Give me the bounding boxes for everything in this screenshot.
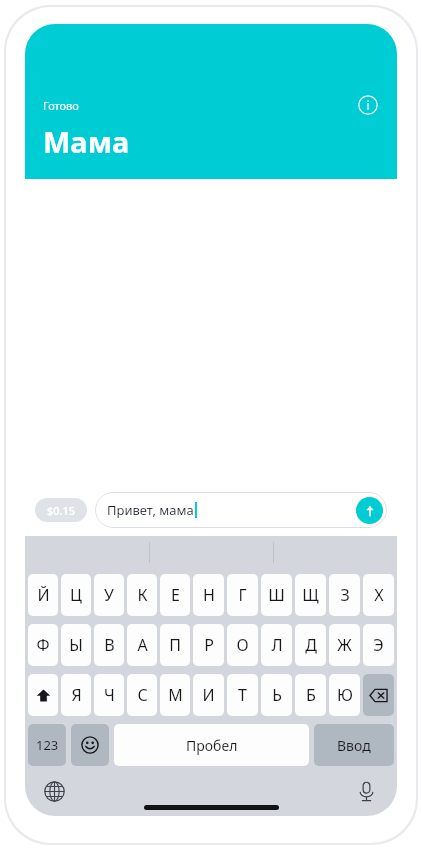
button[interactable]: Я (61, 674, 91, 716)
button[interactable]: Ю (329, 674, 360, 716)
staticText: 123 (36, 736, 59, 754)
button[interactable]: К (127, 574, 157, 616)
button[interactable]: Ф (28, 624, 58, 666)
button[interactable]: Готово (41, 94, 81, 117)
button[interactable]: М (160, 674, 190, 716)
staticText: И (202, 684, 215, 706)
button[interactable]: Р (193, 624, 224, 666)
staticText: Х (374, 584, 384, 606)
button[interactable]: У (94, 574, 124, 616)
staticText: А (137, 634, 148, 656)
button[interactable]: П (160, 624, 190, 666)
staticText: Ы (69, 634, 83, 656)
staticText: Ю (337, 684, 353, 706)
staticText: Ц (70, 584, 82, 606)
button[interactable]: Shift (28, 674, 58, 716)
button[interactable]: Д (295, 624, 326, 666)
staticText: М (168, 684, 183, 706)
button[interactable]: Ц (61, 574, 91, 616)
staticText: П (169, 634, 181, 656)
staticText: Ь (272, 684, 282, 706)
button[interactable]: Й (28, 574, 58, 616)
staticText: З (340, 584, 350, 606)
button[interactable]: Щ (295, 574, 326, 616)
button[interactable]: Б (295, 674, 326, 716)
button[interactable]: Change keyboard language (37, 774, 71, 808)
staticText: Л (271, 634, 283, 656)
staticText: Готово (43, 98, 79, 113)
button[interactable]: Н (193, 574, 224, 616)
staticText: $0.15 (47, 503, 76, 518)
button[interactable]: Л (261, 624, 292, 666)
button[interactable]: Info (355, 92, 381, 118)
staticText: В (104, 634, 115, 656)
button[interactable]: Ввод (314, 724, 394, 766)
button[interactable]: В (94, 624, 124, 666)
staticText: Щ (302, 584, 319, 606)
button[interactable]: Х (363, 574, 394, 616)
staticText: Я (71, 684, 82, 706)
staticText: Й (37, 584, 50, 606)
staticText: У (104, 584, 114, 606)
button[interactable]: 123 (28, 724, 66, 766)
button[interactable]: Ы (61, 624, 91, 666)
staticText: Ч (104, 684, 115, 706)
button[interactable]: Т (227, 674, 258, 716)
button[interactable]: Привет, мама (95, 492, 387, 528)
button[interactable]: С (127, 674, 157, 716)
staticText: Ф (36, 634, 50, 656)
staticText: Г (238, 584, 247, 606)
staticText: Ш (268, 584, 285, 606)
staticText: Е (171, 584, 180, 606)
button[interactable]: Ш (261, 574, 292, 616)
button[interactable]: Ь (261, 674, 292, 716)
button[interactable]: Г (227, 574, 258, 616)
button[interactable]: Пробел (114, 724, 309, 766)
staticText: Ж (337, 634, 352, 656)
button[interactable]: $0.15 (35, 498, 87, 522)
button[interactable]: Voice input (349, 774, 383, 808)
staticText: С (137, 684, 148, 706)
button[interactable]: А (127, 624, 157, 666)
staticText: Пробел (186, 736, 238, 755)
button[interactable]: Э (363, 624, 394, 666)
button[interactable]: Backspace (363, 674, 394, 716)
staticText: К (137, 584, 148, 606)
button[interactable]: О (227, 624, 258, 666)
staticText: О (236, 634, 249, 656)
staticText: Э (373, 634, 384, 656)
button[interactable]: Ч (94, 674, 124, 716)
staticText: Н (203, 584, 215, 606)
staticText: Б (306, 684, 316, 706)
staticText: Привет, мама (107, 501, 194, 519)
button[interactable]: Е (160, 574, 190, 616)
button[interactable]: И (193, 674, 224, 716)
button[interactable]: Emoji (71, 724, 109, 766)
staticText: Р (204, 634, 214, 656)
button[interactable]: З (329, 574, 360, 616)
staticText: Т (238, 684, 247, 706)
button[interactable]: Send (356, 497, 383, 524)
button[interactable]: Ж (329, 624, 360, 666)
staticText: Ввод (337, 736, 371, 755)
staticText: Д (305, 634, 317, 656)
staticText: Мама (43, 122, 130, 161)
